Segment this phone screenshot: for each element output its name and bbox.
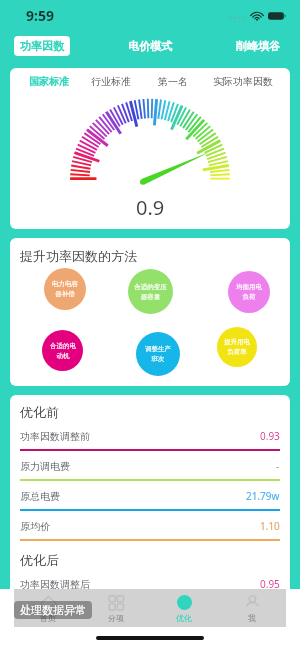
staticText: 1.10 [260, 519, 280, 533]
staticText: 优化 [176, 613, 192, 623]
staticText: 实际功率因数 [213, 75, 273, 88]
staticText: 电价模式 [128, 39, 172, 53]
button[interactable]: 均衡用电 负荷 [228, 271, 270, 313]
button[interactable]: 功率因数 [14, 36, 70, 56]
button[interactable]: 合适的电 动机 [42, 330, 83, 371]
button[interactable]: 第一名 [142, 75, 204, 88]
staticText: 调整生产 班次 [145, 345, 171, 363]
button[interactable]: 功率因数调整前 [20, 426, 280, 456]
button[interactable]: 分项 [82, 589, 150, 627]
staticText: 9:59 [26, 6, 54, 25]
button[interactable]: 原总电费 [20, 486, 280, 516]
button[interactable]: 调整生产 班次 [136, 332, 180, 376]
staticText: 合适的电 动机 [50, 342, 76, 360]
staticText: 功率因数 [20, 39, 64, 53]
staticText: 优化前 [20, 404, 59, 420]
button[interactable]: 原力调电费 [20, 456, 280, 486]
button[interactable]: 实际功率因数 [204, 75, 282, 88]
staticText: - [276, 459, 280, 473]
staticText: 原力调电费 [20, 460, 70, 473]
staticText: 行业标准 [91, 75, 131, 88]
staticText: 原均价 [20, 520, 50, 533]
staticText: 均衡用电 负荷 [236, 283, 262, 301]
staticText: 0.93 [260, 429, 280, 443]
staticText: 第一名 [158, 75, 188, 88]
staticText: 优化后 [20, 552, 59, 568]
button[interactable]: 功率因数调整后 [20, 574, 280, 604]
staticText: 我 [248, 613, 256, 623]
button[interactable]: 削峰填谷 [230, 36, 286, 56]
staticText: 提升功率因数的方法 [20, 248, 137, 264]
staticText: 合适的变压 器容量 [134, 283, 167, 301]
staticText: 处理数据异常 [20, 603, 86, 617]
button[interactable]: 提升用电 负荷率 [217, 327, 257, 367]
staticText: 功率因数调整后 [20, 578, 90, 591]
button[interactable]: 原均价 [20, 516, 280, 546]
staticText: 国家标准 [29, 75, 69, 88]
staticText: 21.79w [246, 489, 280, 503]
staticText: 首页 [40, 613, 56, 623]
button[interactable]: 首页 [14, 589, 82, 627]
staticText: 分项 [108, 613, 124, 623]
button[interactable]: 国家标准 [18, 75, 80, 88]
button[interactable]: 电力电容 器补偿 [44, 268, 86, 310]
staticText: 0.9 [136, 194, 165, 221]
button[interactable]: 优化 [150, 589, 218, 627]
button[interactable]: 行业标准 [80, 75, 142, 88]
staticText: 0.95 [260, 577, 280, 591]
staticText: 电力电容 器补偿 [52, 280, 78, 298]
staticText: 功率因数调整前 [20, 430, 90, 443]
staticText: 原总电费 [20, 490, 60, 503]
staticText: 提升用电 负荷率 [224, 338, 250, 356]
staticText: 削峰填谷 [236, 39, 280, 53]
button[interactable]: 电价模式 [122, 36, 178, 56]
button[interactable]: 合适的变压 器容量 [128, 269, 173, 314]
button[interactable]: 我 [218, 589, 286, 627]
